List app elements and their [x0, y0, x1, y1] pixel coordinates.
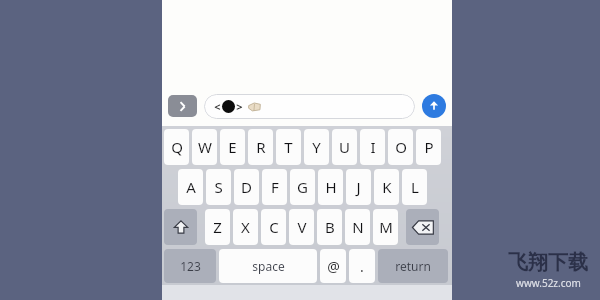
staticText: @ — [327, 257, 340, 276]
staticText: D — [241, 177, 252, 197]
staticText: R — [256, 137, 266, 157]
staticText: > — [236, 99, 243, 114]
button[interactable]: space — [219, 249, 317, 283]
staticText: N — [352, 217, 364, 237]
button[interactable]: Z — [205, 209, 230, 245]
button[interactable]: N — [345, 209, 370, 245]
button[interactable]: I — [360, 129, 385, 165]
staticText: U — [339, 137, 350, 157]
staticText: S — [214, 177, 223, 197]
button[interactable]: Shift — [164, 209, 197, 245]
button[interactable]: D — [234, 169, 259, 205]
button[interactable]: Backspace — [406, 209, 439, 245]
button[interactable]: Q — [164, 129, 189, 165]
staticText: Z — [213, 217, 222, 237]
staticText: L — [411, 177, 419, 197]
button[interactable]: Y — [304, 129, 329, 165]
staticText: M — [379, 217, 393, 237]
button[interactable]: More apps — [168, 95, 197, 117]
button[interactable]: A — [178, 169, 203, 205]
button[interactable]: C — [261, 209, 286, 245]
button[interactable]: G — [290, 169, 315, 205]
button[interactable]: E — [220, 129, 245, 165]
button[interactable]: P — [416, 129, 441, 165]
staticText: < — [214, 99, 221, 114]
button[interactable]: 123 — [164, 249, 216, 283]
button[interactable]: U — [332, 129, 357, 165]
staticText: J — [356, 177, 361, 197]
button[interactable]: X — [233, 209, 258, 245]
button[interactable]: S — [206, 169, 231, 205]
staticText: space — [252, 258, 285, 274]
button[interactable]: return — [378, 249, 448, 283]
button[interactable]: L — [402, 169, 427, 205]
staticText: W — [198, 137, 212, 157]
button[interactable]: . — [349, 249, 375, 283]
button[interactable]: @ — [320, 249, 346, 283]
staticText: V — [297, 217, 307, 237]
staticText: return — [395, 258, 431, 274]
staticText: T — [284, 137, 293, 157]
staticText: K — [382, 177, 392, 197]
staticText: www.52z.com — [516, 276, 581, 290]
button[interactable]: T — [276, 129, 301, 165]
staticText: H — [325, 177, 337, 197]
button[interactable]: O — [388, 129, 413, 165]
staticText: C — [269, 217, 279, 237]
staticText: . — [360, 257, 364, 276]
staticText: X — [241, 217, 250, 237]
button[interactable]: F — [262, 169, 287, 205]
button[interactable]: W — [192, 129, 217, 165]
staticText: 123 — [180, 258, 201, 274]
staticText: Y — [312, 137, 321, 157]
staticText: O — [395, 137, 407, 157]
button[interactable]: V — [289, 209, 314, 245]
staticText: P — [424, 137, 434, 157]
button[interactable]: R — [248, 129, 273, 165]
staticText: G — [297, 177, 308, 197]
button[interactable]: J — [346, 169, 371, 205]
staticText: A — [186, 177, 196, 197]
staticText: F — [271, 177, 279, 197]
button[interactable]: M — [373, 209, 398, 245]
button[interactable]: < — [204, 94, 415, 119]
staticText: E — [228, 137, 237, 157]
staticText: 飞翔下载 — [508, 250, 588, 275]
button[interactable]: B — [317, 209, 342, 245]
staticText: B — [325, 217, 335, 237]
button[interactable]: Send — [422, 94, 446, 118]
staticText: Q — [171, 137, 183, 157]
button[interactable]: K — [374, 169, 399, 205]
button[interactable]: H — [318, 169, 343, 205]
staticText: I — [370, 137, 376, 157]
